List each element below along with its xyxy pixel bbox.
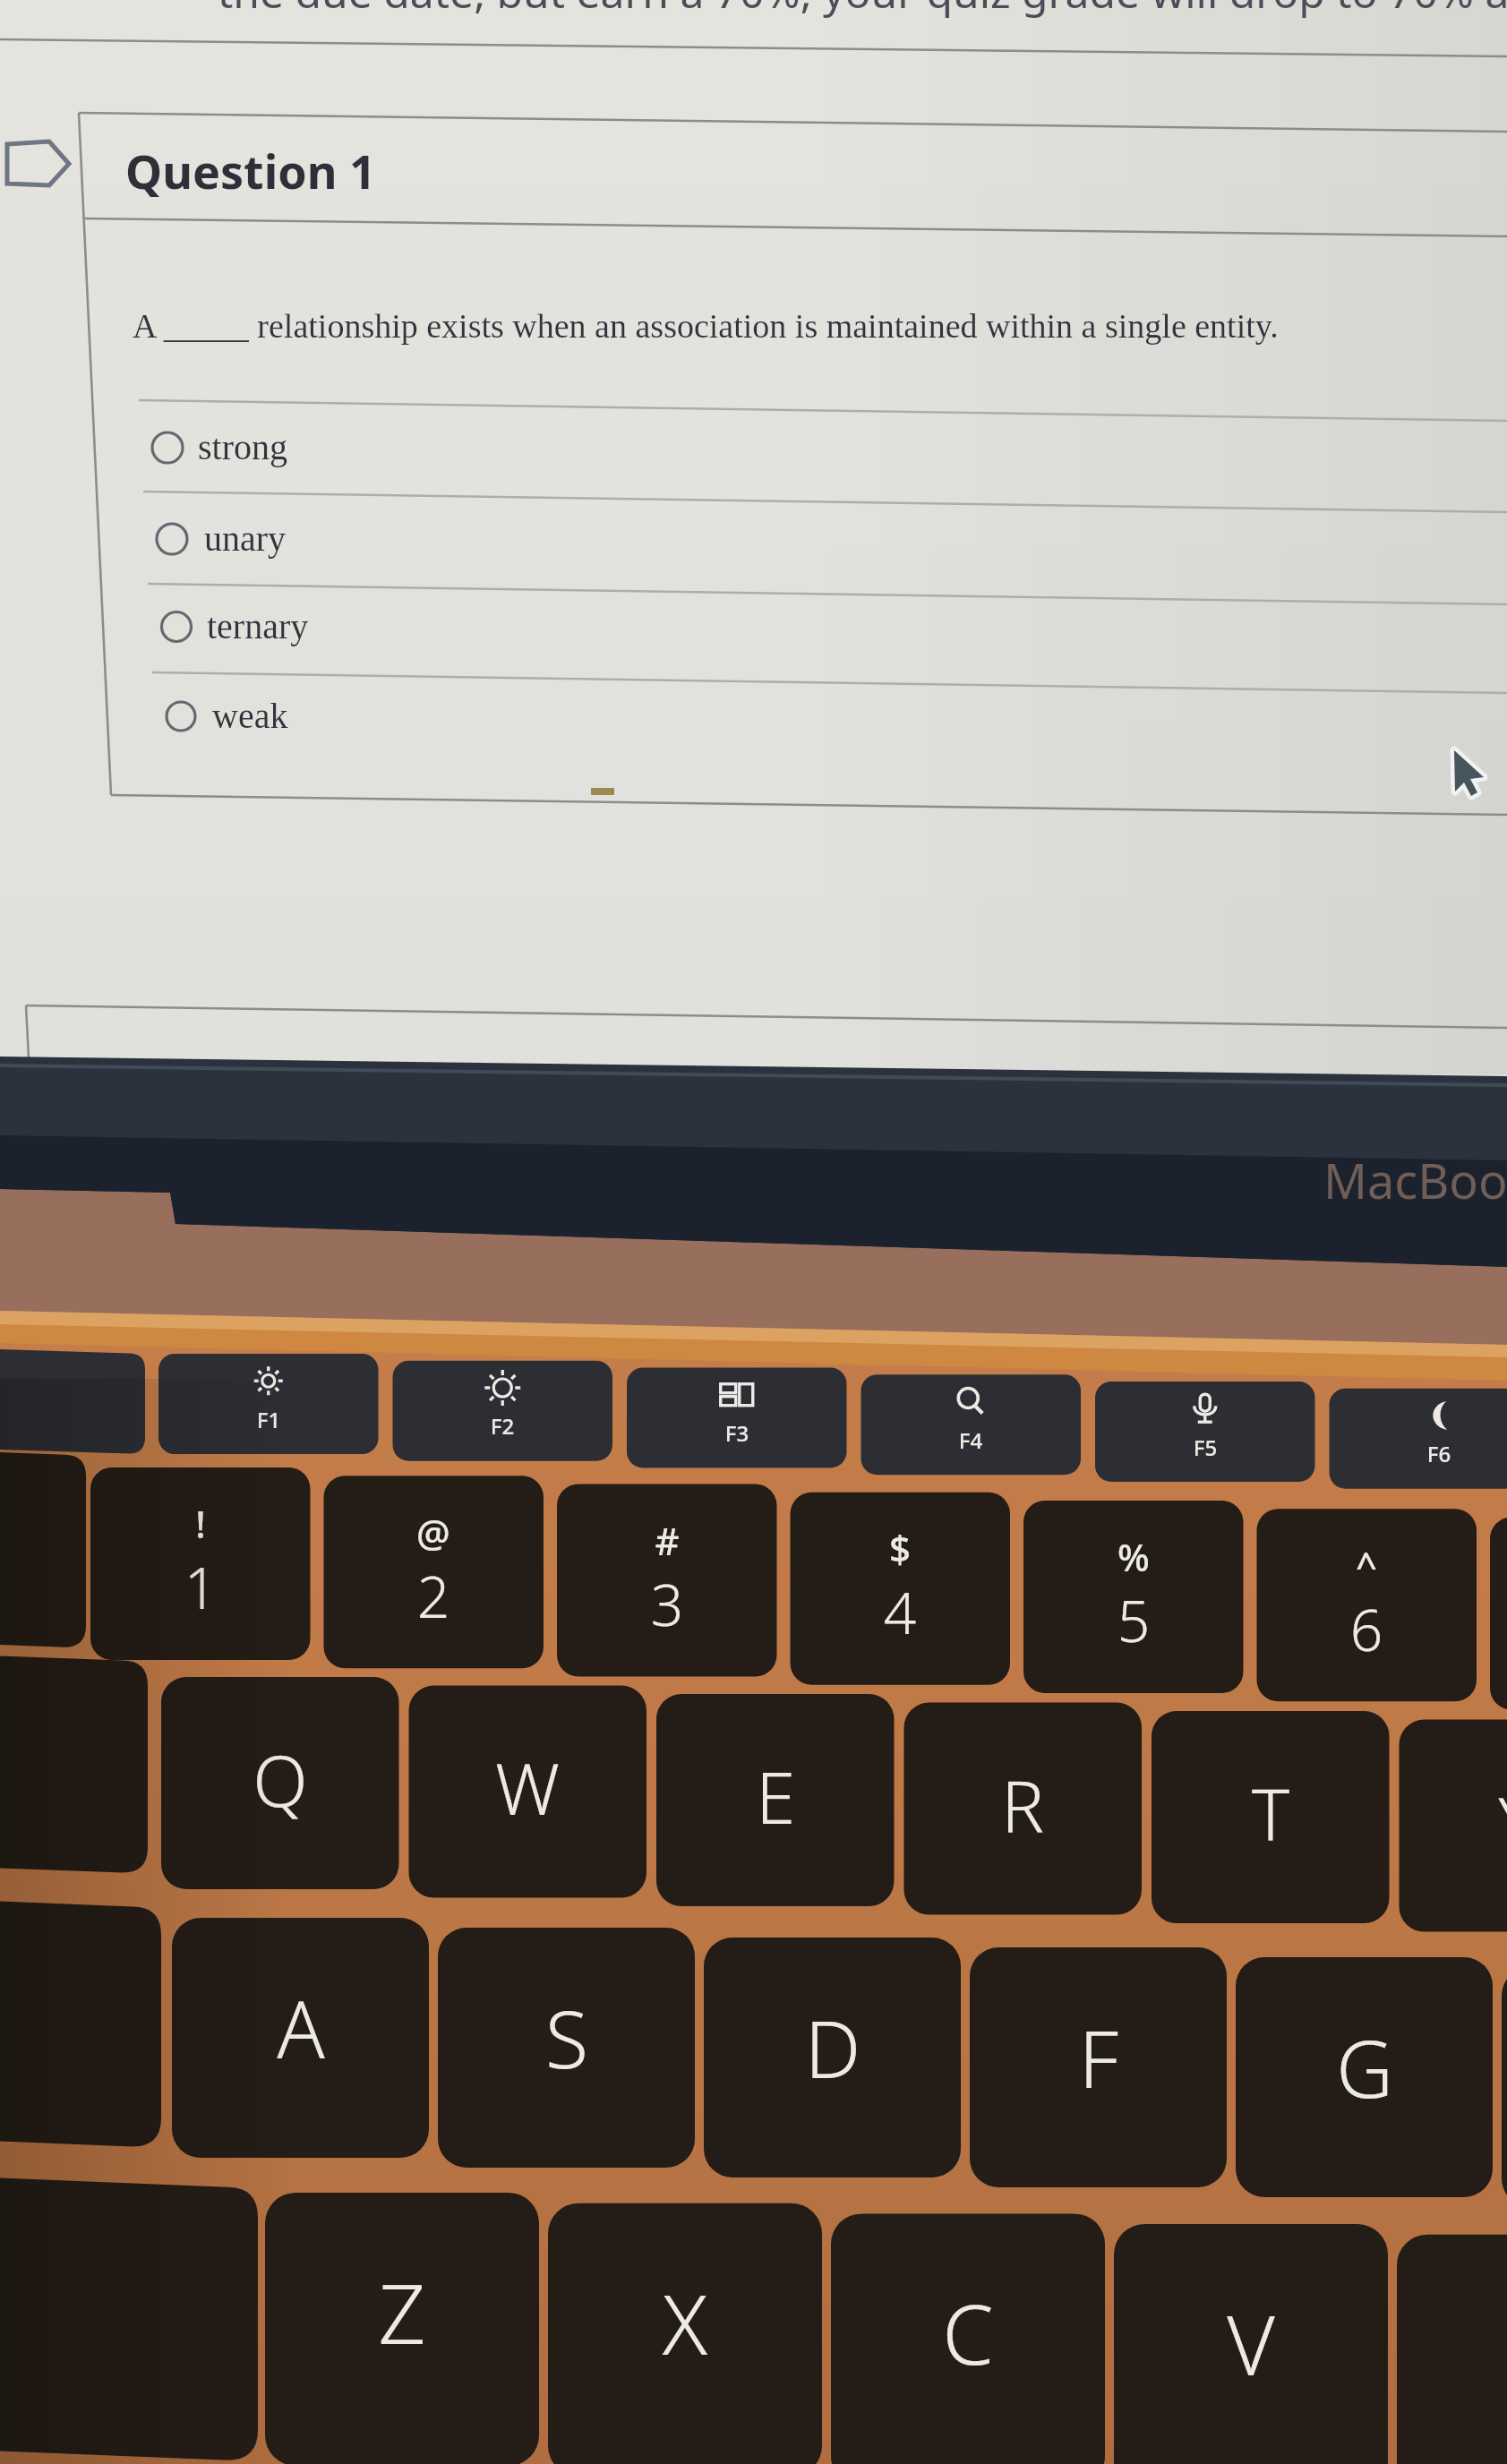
- button[interactable]: unary: [139, 494, 1503, 584]
- staticText: F6: [1396, 1439, 1482, 1468]
- staticText: weak: [212, 696, 288, 735]
- button[interactable]: Flag this question: [0, 134, 75, 193]
- staticText: F1: [226, 1405, 312, 1434]
- staticText: 6: [1252, 1590, 1481, 1668]
- button[interactable]: Mission Control: [627, 1367, 847, 1467]
- staticText: ternary: [207, 606, 309, 646]
- staticText: #: [592, 1515, 742, 1566]
- staticText: A: [143, 1974, 458, 2082]
- button[interactable]: G: [1236, 1957, 1493, 2197]
- button[interactable]: Y: [1400, 1720, 1507, 1932]
- button[interactable]: Spotlight search: [861, 1374, 1082, 1475]
- staticText: !: [125, 1498, 276, 1549]
- button[interactable]: X: [548, 2203, 822, 2464]
- staticText: strong: [198, 427, 287, 466]
- staticText: S: [409, 1984, 724, 2092]
- staticText: C: [803, 2277, 1133, 2389]
- staticText: 7: [1486, 1598, 1507, 1676]
- staticText: F: [941, 2004, 1256, 2111]
- button[interactable]: H: [1502, 1967, 1507, 2207]
- staticText: F4: [928, 1425, 1014, 1455]
- staticText: Z: [237, 2256, 567, 2368]
- staticText: F3: [694, 1418, 780, 1448]
- button[interactable]: 5: [1023, 1501, 1244, 1693]
- staticText: W: [384, 1738, 671, 1835]
- staticText: D: [675, 1994, 990, 2101]
- button[interactable]: Do not disturb: [1330, 1389, 1507, 1489]
- button[interactable]: Brightness down: [158, 1354, 379, 1454]
- button[interactable]: C: [831, 2213, 1105, 2464]
- button[interactable]: E: [656, 1694, 895, 1906]
- staticText: B: [1369, 2298, 1507, 2410]
- staticText: A _____ relationship exists when an asso…: [133, 307, 1279, 345]
- staticText: 3: [552, 1565, 782, 1643]
- staticText: R: [879, 1755, 1166, 1852]
- button[interactable]: Question 1: [125, 139, 376, 202]
- staticText: unary: [204, 518, 287, 558]
- staticText: 5: [1019, 1581, 1248, 1659]
- staticText: Q: [137, 1730, 424, 1827]
- button[interactable]: Z: [265, 2193, 539, 2464]
- button[interactable]: 4: [791, 1493, 1011, 1685]
- button[interactable]: Dictation: [1095, 1382, 1315, 1482]
- button[interactable]: strong: [134, 403, 1498, 492]
- button[interactable]: ternary: [143, 586, 1507, 672]
- staticText: 4: [785, 1573, 1015, 1651]
- staticText: 2: [319, 1557, 548, 1635]
- staticText: 1: [86, 1548, 315, 1626]
- staticText: $: [825, 1523, 975, 1574]
- staticText: H: [1473, 2023, 1507, 2131]
- staticText: @: [358, 1507, 509, 1558]
- button[interactable]: F: [970, 1947, 1227, 2187]
- staticText: Y: [1374, 1772, 1507, 1869]
- button[interactable]: S: [438, 1928, 695, 2168]
- staticText: E: [632, 1747, 919, 1844]
- staticText: T: [1127, 1764, 1414, 1861]
- staticText: %: [1058, 1531, 1209, 1582]
- staticText: F5: [1162, 1433, 1248, 1462]
- button[interactable]: 3: [557, 1484, 777, 1676]
- button[interactable]: 7: [1490, 1517, 1507, 1709]
- staticText: F2: [459, 1411, 545, 1441]
- staticText: Question 1: [125, 139, 376, 202]
- button[interactable]: Q: [161, 1677, 399, 1889]
- button[interactable]: 6: [1257, 1509, 1477, 1701]
- button[interactable]: 1: [90, 1467, 311, 1660]
- button[interactable]: B: [1397, 2235, 1507, 2464]
- staticText: X: [520, 2267, 850, 2379]
- staticText: ^: [1291, 1539, 1442, 1590]
- button[interactable]: Brightness up: [393, 1361, 613, 1461]
- staticText: MacBoo: [1323, 1147, 1507, 1213]
- button[interactable]: 2: [324, 1476, 544, 1668]
- button[interactable]: R: [904, 1703, 1143, 1915]
- button[interactable]: T: [1152, 1711, 1390, 1923]
- button[interactable]: V: [1114, 2224, 1388, 2464]
- button[interactable]: weak: [148, 675, 1507, 765]
- staticText: the due date, but earn a 70%, your quiz …: [218, 0, 1507, 21]
- button[interactable]: A: [172, 1918, 429, 2158]
- staticText: G: [1207, 2014, 1507, 2121]
- staticText: V: [1086, 2288, 1416, 2400]
- button[interactable]: W: [409, 1686, 647, 1898]
- button[interactable]: D: [704, 1938, 961, 2177]
